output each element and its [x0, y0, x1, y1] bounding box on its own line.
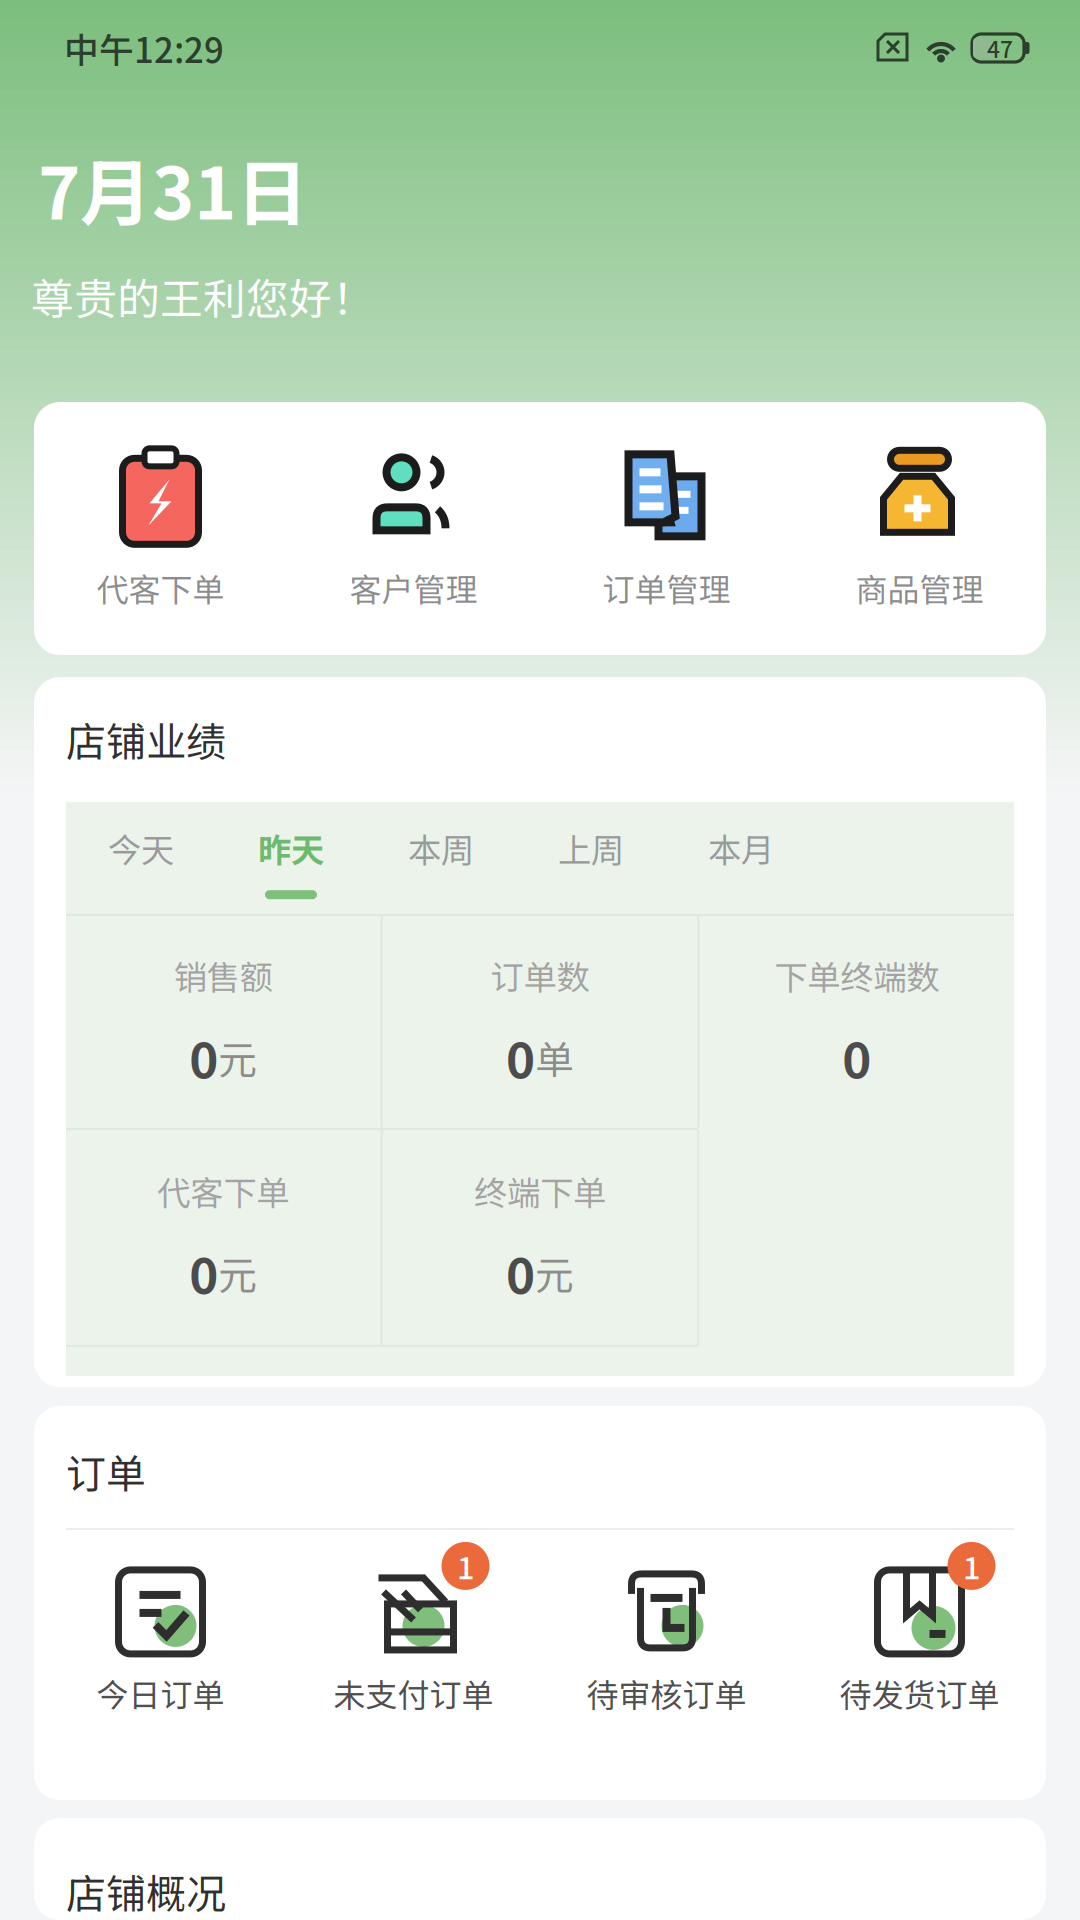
staticText: 中午12:29: [64, 23, 224, 73]
staticText: 订单管理: [602, 564, 730, 611]
staticText: 1: [457, 1544, 474, 1588]
staticText: 待发货订单: [839, 1670, 999, 1716]
staticText: 下单终端数: [774, 951, 939, 999]
staticText: 终端下单: [474, 1167, 606, 1215]
button[interactable]: 今天: [66, 802, 216, 899]
staticText: 单: [535, 1029, 574, 1085]
staticText: 0: [842, 1021, 871, 1093]
staticText: 47: [987, 32, 1013, 64]
staticText: 0: [506, 1021, 535, 1093]
button[interactable]: 代客下单: [34, 438, 287, 619]
staticText: 客户管理: [349, 564, 477, 611]
staticText: 本周: [408, 824, 474, 872]
staticText: 未支付订单: [333, 1670, 493, 1716]
staticText: 0: [506, 1237, 535, 1308]
staticText: 代客下单: [96, 564, 224, 611]
staticText: 元: [535, 1245, 574, 1301]
staticText: 0: [189, 1021, 218, 1093]
button[interactable]: 本月: [666, 802, 816, 899]
staticText: 昨天: [258, 824, 324, 872]
staticText: 订单数: [490, 951, 589, 999]
staticText: 待审核订单: [586, 1670, 746, 1716]
staticText: 商品管理: [855, 564, 983, 611]
staticText: 销售额: [174, 951, 273, 999]
staticText: 店铺业绩: [66, 710, 226, 768]
button[interactable]: 客户管理: [287, 438, 540, 619]
staticText: 代客下单: [157, 1167, 289, 1215]
staticText: 元: [218, 1029, 257, 1085]
staticText: 元: [218, 1245, 257, 1301]
button[interactable]: 订单管理: [540, 438, 793, 619]
button[interactable]: 1: [287, 1564, 540, 1716]
button[interactable]: 商品管理: [793, 438, 1046, 619]
staticText: 7月31日: [38, 136, 308, 240]
staticText: 1: [963, 1544, 980, 1588]
button[interactable]: 上周: [516, 802, 666, 899]
button[interactable]: 待审核订单: [540, 1564, 793, 1716]
staticText: 上周: [558, 824, 624, 872]
staticText: 今天: [108, 824, 174, 872]
staticText: 店铺概况: [66, 1862, 226, 1920]
staticText: 订单: [66, 1442, 146, 1500]
staticText: 0: [189, 1237, 218, 1308]
button[interactable]: 昨天: [216, 802, 366, 899]
staticText: 今日订单: [96, 1670, 224, 1716]
button[interactable]: 1: [793, 1564, 1046, 1716]
button[interactable]: 本周: [366, 802, 516, 899]
staticText: 本月: [708, 824, 774, 872]
staticText: 尊贵的王利您好！: [31, 265, 375, 327]
button[interactable]: 今日订单: [34, 1564, 287, 1716]
